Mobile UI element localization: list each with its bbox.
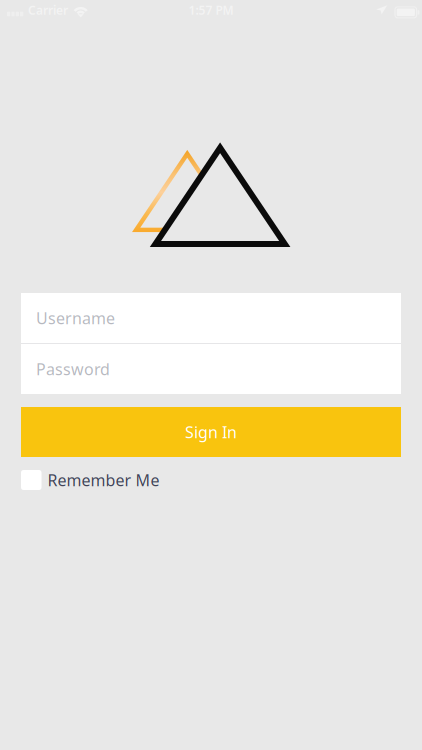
staticText: 1:57 PM [188, 2, 233, 18]
staticText: Username [36, 307, 115, 329]
button[interactable]: Username [21, 293, 401, 343]
button[interactable]: Remember Me [21, 470, 401, 490]
button[interactable]: Sign In [21, 407, 401, 457]
button[interactable]: Password [21, 344, 401, 394]
staticText: Remember Me [47, 469, 159, 491]
staticText: Password [36, 358, 110, 380]
staticText: Carrier [28, 2, 68, 18]
staticText: Sign In [185, 421, 237, 443]
